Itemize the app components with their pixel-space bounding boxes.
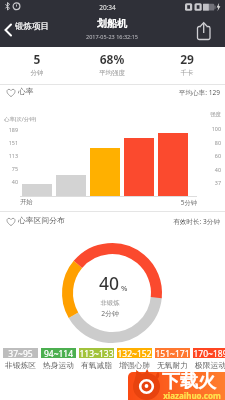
staticText: 心率区间分布 xyxy=(18,215,65,225)
button[interactable] xyxy=(128,372,225,400)
staticText: 心率(次/分钟) xyxy=(4,115,37,122)
staticText: 增强心肺 xyxy=(114,360,155,370)
button[interactable] xyxy=(193,348,225,358)
staticText: 锻炼项目 xyxy=(15,21,49,32)
staticText: 40 xyxy=(2,178,18,185)
staticText: % xyxy=(121,283,128,293)
staticText: 热身运动 xyxy=(38,360,79,370)
staticText: 151 xyxy=(2,139,18,146)
staticText: 113 xyxy=(2,152,18,159)
staticText: 下载火 xyxy=(162,370,216,393)
staticText: 极限运动 xyxy=(190,360,225,370)
staticText: 100 xyxy=(204,125,221,132)
button[interactable] xyxy=(117,348,152,358)
staticText: 千卡 xyxy=(167,69,207,77)
staticText: 40 xyxy=(81,271,137,295)
staticText: 平均心率: 129 xyxy=(138,88,220,97)
staticText: 94~114 xyxy=(41,348,76,360)
button[interactable] xyxy=(155,348,190,358)
staticText: 划船机 xyxy=(87,17,137,30)
staticText: 2分钟 xyxy=(82,309,138,318)
staticText: 5 xyxy=(17,51,57,67)
staticText: 29 xyxy=(167,51,207,67)
staticText: 强度 xyxy=(204,111,221,118)
staticText: 心率 xyxy=(18,86,34,96)
staticText: 20:34 xyxy=(94,3,121,12)
staticText: 170~189 xyxy=(193,348,225,360)
staticText: 分钟 xyxy=(17,69,57,77)
staticText: 开始 xyxy=(20,198,33,206)
staticText: 113~133 xyxy=(79,348,114,360)
button[interactable] xyxy=(79,348,114,358)
staticText: 有效时长: 3分钟 xyxy=(138,217,220,226)
staticText: 非锻炼区 xyxy=(0,360,41,370)
staticText: 2017-05-23 16:32:15 xyxy=(72,33,152,40)
staticText: 75 xyxy=(2,165,18,172)
staticText: 无氧耐力 xyxy=(152,360,193,370)
staticText: xiazaihuo.com xyxy=(160,390,224,400)
button[interactable] xyxy=(41,348,76,358)
staticText: 189 xyxy=(2,126,18,133)
staticText: 132~152 xyxy=(117,348,152,360)
staticText: 151~171 xyxy=(155,348,190,360)
staticText: 40 xyxy=(204,166,221,173)
staticText: 80 xyxy=(204,139,221,146)
staticText: 5分钟 xyxy=(168,198,197,207)
staticText: 有氧减脂 xyxy=(76,360,117,370)
button[interactable] xyxy=(196,17,222,43)
button[interactable] xyxy=(3,348,38,358)
staticText: 60 xyxy=(204,152,221,159)
staticText: 68% xyxy=(92,51,132,67)
staticText: 37 xyxy=(204,179,221,186)
staticText: 平均强度 xyxy=(92,69,132,77)
staticText: 非锻炼 xyxy=(82,299,138,307)
button[interactable] xyxy=(0,14,62,47)
staticText: 37~95 xyxy=(3,348,38,360)
